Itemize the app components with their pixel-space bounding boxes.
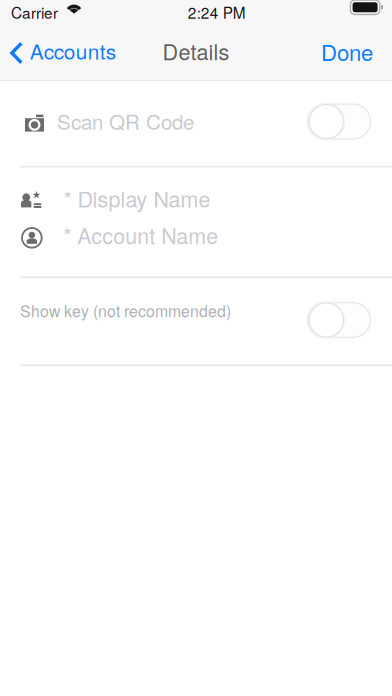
button[interactable]: * Account Name: [0, 221, 392, 276]
staticText: Show key (not recommended): [20, 299, 231, 322]
button[interactable]: Scan QR Code: [0, 81, 392, 166]
staticText: * Account Name: [63, 219, 218, 250]
button[interactable]: Show key (not recommended): [0, 278, 392, 365]
staticText: Scan QR Code: [57, 106, 194, 135]
staticText: * Display Name: [63, 183, 210, 214]
button[interactable]: Done: [307, 25, 392, 80]
button[interactable]: Accounts: [0, 25, 126, 80]
staticText: Accounts: [30, 35, 116, 65]
staticText: 2:24 PM: [188, 1, 246, 23]
staticText: Carrier: [11, 1, 58, 23]
staticText: Details: [162, 35, 229, 66]
staticText: Done: [321, 35, 373, 67]
button[interactable]: * Display Name: [0, 167, 392, 221]
